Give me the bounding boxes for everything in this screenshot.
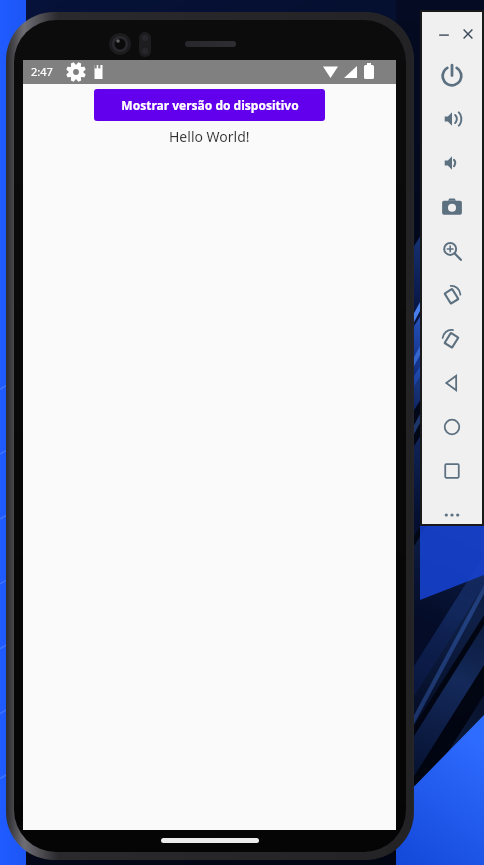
button[interactable]: More (436, 499, 468, 531)
button[interactable]: Take screenshot (436, 191, 468, 223)
button[interactable]: Volume down (436, 147, 468, 179)
button[interactable]: Zoom (436, 235, 468, 267)
button[interactable]: Minimize (433, 23, 455, 45)
button[interactable]: Power (436, 59, 468, 91)
staticText: Hello World! (169, 127, 250, 146)
button[interactable]: Back (436, 367, 468, 399)
staticText: Mostrar versão do dispositivo (121, 97, 299, 113)
button[interactable]: Rotate left (436, 279, 468, 311)
button[interactable]: Volume up (436, 103, 468, 135)
staticText: 2:47 (31, 64, 53, 79)
button[interactable]: Close (457, 23, 479, 45)
button[interactable]: Rotate right (436, 323, 468, 355)
button[interactable]: Overview (436, 455, 468, 487)
button[interactable]: Home (436, 411, 468, 443)
button[interactable]: Mostrar versão do dispositivo (94, 89, 325, 121)
